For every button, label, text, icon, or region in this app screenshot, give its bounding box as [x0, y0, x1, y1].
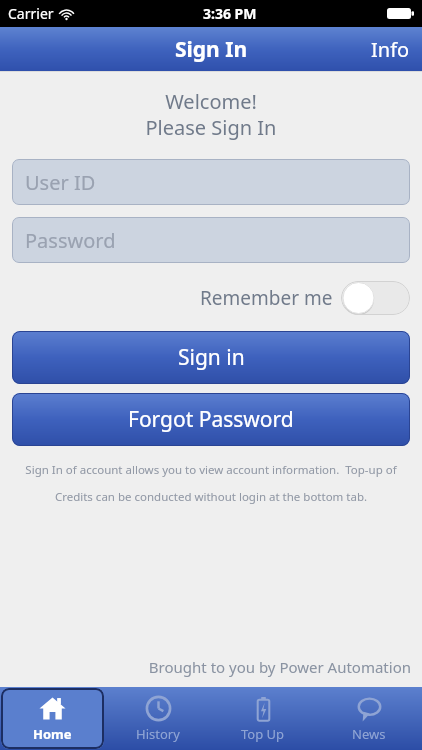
staticText: Forgot Password: [128, 405, 294, 434]
staticText: Sign In of account allows you to view ac…: [14, 462, 408, 505]
button[interactable]: History: [106, 688, 209, 749]
button[interactable]: News: [317, 688, 421, 749]
staticText: Password: [25, 227, 116, 254]
button[interactable]: Sign in: [12, 331, 410, 384]
staticText: Top Up: [241, 725, 285, 743]
staticText: Home: [33, 725, 72, 743]
staticText: Sign In: [175, 35, 248, 64]
staticText: Remember me: [200, 285, 333, 311]
staticText: 3:36 PM: [203, 4, 257, 23]
staticText: User ID: [25, 169, 96, 196]
staticText: Info: [371, 36, 410, 63]
staticText: Sign in: [178, 343, 245, 372]
button[interactable]: User ID: [12, 159, 410, 205]
button[interactable]: Top Up: [211, 688, 315, 749]
button[interactable]: Password: [12, 217, 410, 263]
button[interactable]: Forgot Password: [12, 393, 410, 446]
staticText: Carrier: [8, 4, 54, 23]
staticText: Brought to you by Power Automation: [0, 657, 411, 677]
staticText: History: [136, 725, 180, 743]
button[interactable]: Home: [1, 688, 104, 749]
button[interactable]: Remember me toggle: [341, 281, 410, 315]
staticText: Welcome! Please Sign In: [0, 88, 422, 140]
button[interactable]: Info: [359, 28, 422, 71]
staticText: News: [352, 725, 386, 743]
